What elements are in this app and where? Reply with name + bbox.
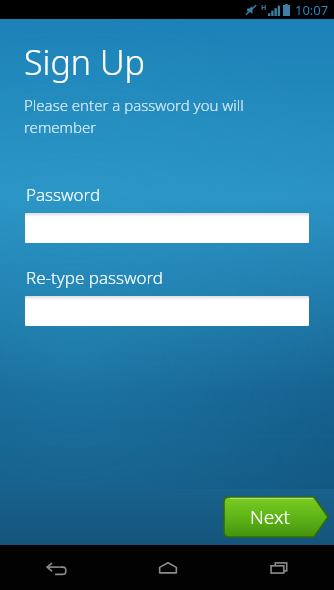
button[interactable]: Home (112, 545, 223, 590)
button[interactable] (25, 296, 309, 326)
button[interactable] (25, 213, 309, 243)
button[interactable]: Recent apps (223, 545, 334, 590)
staticText: H (261, 3, 267, 13)
staticText: Sign Up (24, 39, 145, 85)
staticText: Password (26, 183, 101, 206)
button[interactable]: Back (0, 545, 112, 590)
staticText: Re-type password (26, 266, 164, 289)
staticText: Please enter a password you will remembe… (24, 95, 244, 138)
staticText: 10:07 (295, 1, 329, 19)
staticText: Next (250, 504, 290, 530)
button[interactable]: Next (224, 497, 328, 537)
